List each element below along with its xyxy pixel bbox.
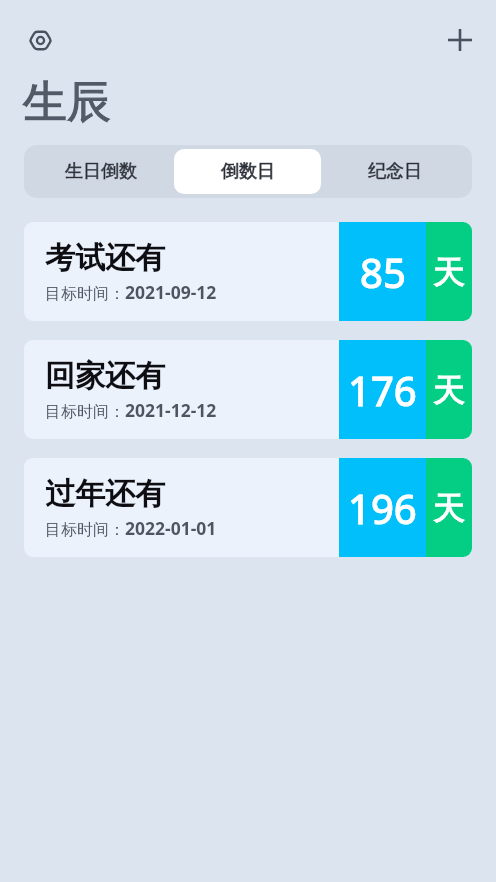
staticText: 生辰: [23, 75, 111, 130]
staticText: 倒数日: [221, 160, 275, 183]
staticText: 回家还有: [45, 357, 165, 395]
staticText: 85: [360, 245, 406, 299]
staticText: 纪念日: [368, 160, 422, 183]
button[interactable]: 过年还有: [24, 458, 472, 557]
staticText: 目标时间：2021-09-12: [45, 280, 217, 304]
staticText: 天: [433, 252, 465, 292]
button[interactable]: 考试还有: [24, 222, 472, 321]
staticText: 生辰: [23, 75, 111, 130]
staticText: 天: [433, 488, 465, 528]
button[interactable]: Settings: [17, 17, 63, 63]
staticText: 天: [433, 252, 465, 292]
button[interactable]: Add: [437, 17, 483, 63]
staticText: 生日倒数: [65, 160, 137, 183]
staticText: 纪念日: [368, 160, 422, 183]
staticText: 生日倒数: [65, 160, 137, 183]
staticText: 目标时间：2022-01-01: [45, 516, 217, 540]
button[interactable]: 倒数日: [174, 149, 321, 194]
staticText: 176: [348, 363, 417, 417]
staticText: 85: [360, 245, 406, 299]
staticText: 过年还有: [45, 475, 165, 513]
staticText: 倒数日: [221, 160, 275, 183]
staticText: 考试还有: [45, 239, 165, 277]
staticText: 天: [433, 370, 465, 410]
staticText: 天: [433, 488, 465, 528]
button[interactable]: 回家还有: [24, 340, 472, 439]
button[interactable]: 生日倒数: [28, 149, 174, 194]
staticText: 176: [348, 363, 417, 417]
button[interactable]: 纪念日: [321, 149, 468, 194]
staticText: 目标时间：2021-12-12: [45, 398, 217, 422]
staticText: 196: [348, 481, 417, 535]
staticText: 天: [433, 370, 465, 410]
staticText: 196: [348, 481, 417, 535]
